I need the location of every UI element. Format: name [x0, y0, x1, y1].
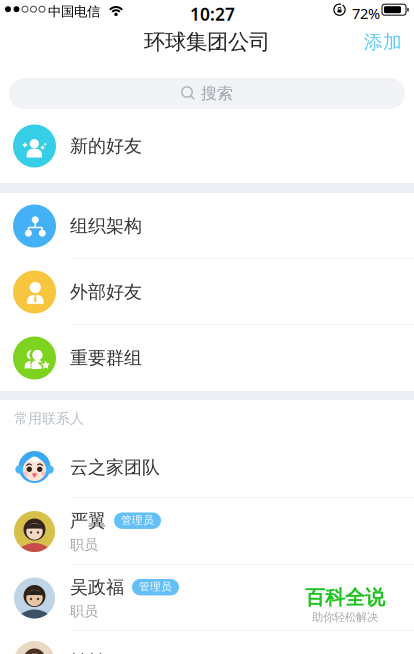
- staticText: 环球集团公司: [144, 29, 270, 55]
- button[interactable]: 转转: [0, 631, 414, 654]
- button[interactable]: 搜索: [9, 78, 405, 109]
- button[interactable]: 重要群组: [0, 325, 414, 391]
- staticText: 10:27: [190, 2, 235, 26]
- button[interactable]: 吴政福: [0, 565, 414, 631]
- staticText: 重要群组: [70, 347, 142, 369]
- staticText: 中国电信: [48, 3, 100, 20]
- staticText: 严翼: [70, 509, 106, 532]
- staticText: 管理员: [139, 580, 172, 593]
- button[interactable]: 外部好友: [0, 259, 414, 325]
- staticText: 搜索: [201, 83, 233, 104]
- staticText: 助你轻松解决: [312, 610, 378, 624]
- staticText: 管理员: [121, 513, 154, 527]
- staticText: 职员: [70, 602, 98, 620]
- staticText: 职员: [70, 536, 98, 554]
- staticText: 组织架构: [70, 215, 142, 237]
- staticText: 外部好友: [70, 281, 142, 303]
- staticText: 吴政福: [70, 576, 124, 598]
- staticText: 添加: [364, 30, 402, 54]
- button[interactable]: 添加: [352, 20, 414, 64]
- staticText: 百科全说: [305, 585, 385, 610]
- button[interactable]: 组织架构: [0, 193, 414, 259]
- staticText: 常用联系人: [14, 410, 84, 427]
- staticText: 新的好友: [70, 135, 142, 157]
- staticText: 72%: [352, 3, 380, 23]
- button[interactable]: 新的好友: [0, 109, 414, 183]
- staticText: 云之家团队: [70, 456, 160, 479]
- button[interactable]: 严翼: [0, 498, 414, 565]
- button[interactable]: 云之家团队: [0, 437, 414, 498]
- staticText: 转转: [70, 650, 106, 654]
